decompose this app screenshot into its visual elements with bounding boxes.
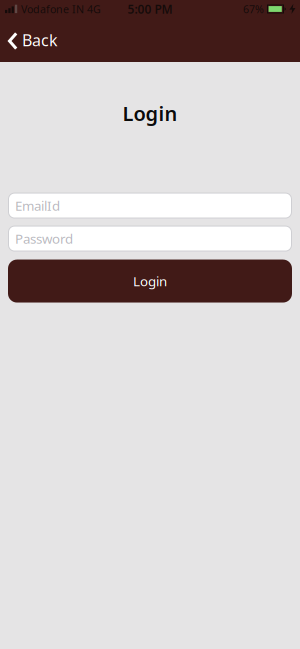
staticText: Password <box>15 230 73 247</box>
staticText: 4G <box>87 2 101 16</box>
button[interactable]: Login <box>8 260 292 303</box>
staticText: Vodafone IN <box>21 2 84 16</box>
staticText: Login <box>122 100 177 127</box>
staticText: Back <box>22 29 58 51</box>
staticText: 67% <box>243 2 264 16</box>
staticText: 5:00 PM <box>127 1 172 17</box>
staticText: EmailId <box>15 197 60 214</box>
button[interactable]: EmailId <box>8 193 292 219</box>
button[interactable]: Password <box>8 226 292 252</box>
staticText: Login <box>133 272 167 290</box>
button[interactable]: Back <box>0 29 58 51</box>
